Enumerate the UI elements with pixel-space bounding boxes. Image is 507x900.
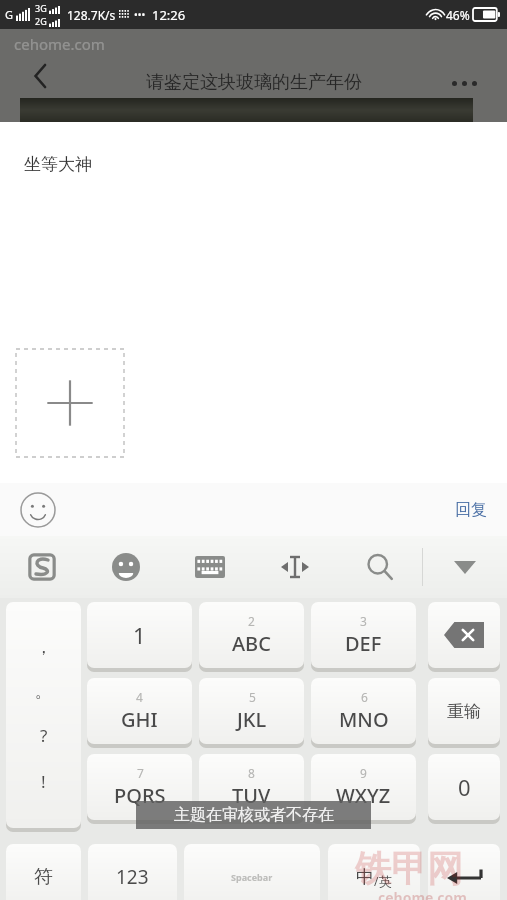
button[interactable]: 重输	[428, 678, 500, 744]
other: Backspace	[444, 622, 484, 648]
button[interactable]: Keyboard layout	[168, 536, 252, 598]
staticText: 铁甲网	[355, 846, 463, 891]
button[interactable]: Emoticons	[84, 536, 168, 598]
staticText: DEF	[345, 630, 382, 657]
button[interactable]: 6	[311, 678, 416, 744]
staticText: 6	[361, 689, 368, 705]
staticText: 3	[360, 613, 367, 629]
staticText: 128.7K/s	[67, 7, 116, 23]
button[interactable]: 123	[88, 844, 177, 900]
staticText: G	[5, 7, 14, 22]
staticText: ?	[40, 724, 48, 747]
staticText: JKL	[237, 706, 267, 733]
staticText: /	[374, 873, 379, 889]
button[interactable]: 符	[6, 844, 81, 900]
button[interactable]: Spacebar	[184, 844, 320, 900]
staticText: 123	[116, 864, 149, 890]
button[interactable]: 0	[428, 754, 500, 820]
button[interactable]: Emoji	[14, 486, 62, 534]
button[interactable]: 1	[87, 602, 192, 668]
staticText: PQRS	[114, 782, 166, 809]
staticText: 8	[248, 765, 255, 781]
button[interactable]: 4	[87, 678, 192, 744]
staticText: 符	[34, 865, 53, 889]
staticText: 坐等大神	[24, 154, 92, 175]
button[interactable]: Sogou input	[0, 536, 84, 598]
staticText: 重输	[447, 701, 481, 722]
staticText: ，	[35, 637, 52, 658]
staticText: 回复	[455, 500, 487, 520]
staticText: WXYZ	[336, 782, 391, 809]
staticText: 请鉴定这块玻璃的生产年份	[146, 71, 362, 94]
button[interactable]: Add image	[16, 349, 124, 457]
button[interactable]: 5	[199, 678, 304, 744]
staticText: 英	[379, 873, 392, 889]
button[interactable]: 7	[87, 754, 192, 820]
button[interactable]: ，	[6, 602, 81, 828]
staticText: •••	[134, 8, 146, 22]
staticText: 0	[458, 772, 471, 802]
button[interactable]: Collapse keyboard	[422, 536, 507, 598]
button[interactable]: Enter	[428, 844, 500, 900]
staticText: 4	[136, 689, 143, 705]
staticText: 。	[35, 681, 52, 702]
button[interactable]: Backspace	[428, 602, 500, 668]
button[interactable]: 中	[328, 844, 420, 900]
staticText: !	[41, 770, 46, 793]
button[interactable]: Back	[18, 54, 62, 98]
staticText: Spacebar	[231, 871, 273, 883]
staticText: 46%	[446, 7, 470, 23]
staticText: 5	[249, 689, 256, 705]
staticText: 1	[133, 620, 146, 650]
button[interactable]: More options	[439, 63, 489, 103]
staticText: 3G	[35, 2, 47, 14]
staticText: cehome.com	[14, 34, 105, 54]
staticText: 2	[248, 613, 255, 629]
staticText: ABC	[232, 630, 271, 657]
staticText: 7	[137, 765, 144, 781]
button[interactable]: 8	[199, 754, 304, 820]
staticText: 中	[356, 866, 374, 889]
staticText: GHI	[121, 706, 158, 733]
staticText: MNO	[339, 706, 389, 733]
button[interactable]: Search	[337, 536, 422, 598]
staticText: cehome.com	[378, 888, 467, 900]
staticText: 12:26	[152, 6, 186, 24]
button[interactable]: 3	[311, 602, 416, 668]
other: Enter	[447, 867, 481, 887]
button[interactable]: 9	[311, 754, 416, 820]
staticText: TUV	[232, 782, 271, 809]
staticText: 2G	[35, 15, 47, 27]
button[interactable]: Cursor move	[252, 536, 337, 598]
button[interactable]: 回复	[449, 494, 493, 526]
button[interactable]: 2	[199, 602, 304, 668]
staticText: 主题在审核或者不存在	[174, 805, 334, 825]
staticText: 9	[360, 765, 367, 781]
